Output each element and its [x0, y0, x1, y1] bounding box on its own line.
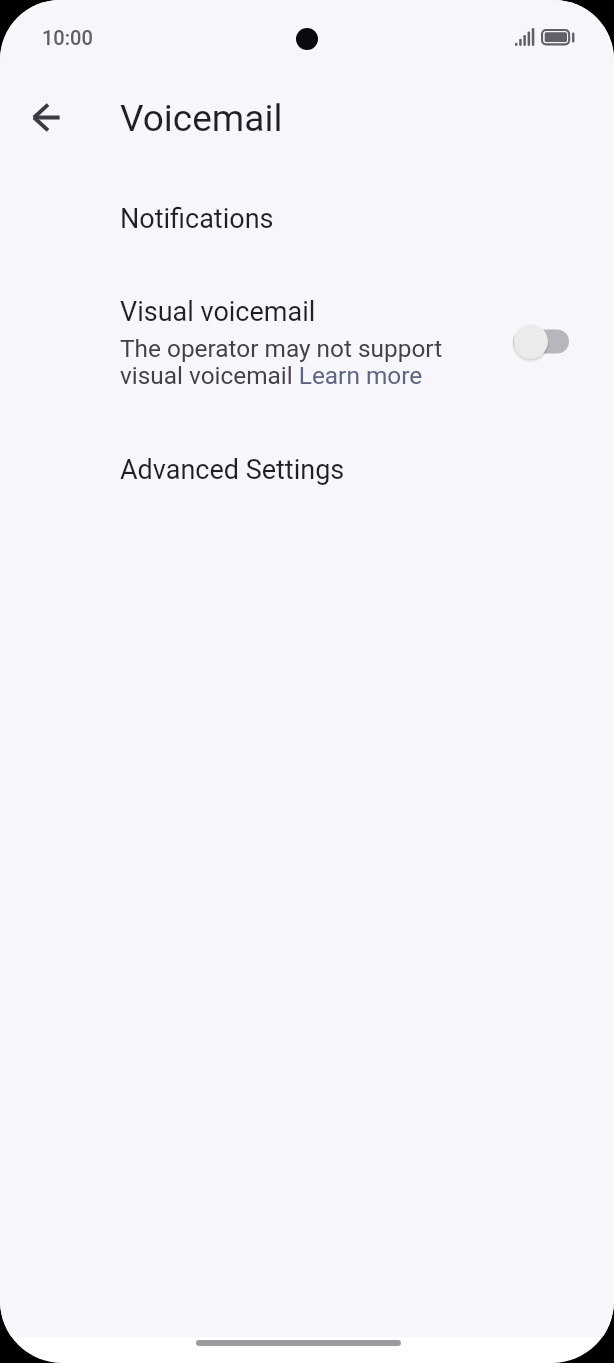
button[interactable]: Visual voicemail [0, 290, 614, 402]
staticText: Voicemail [120, 97, 283, 140]
button[interactable]: Back [20, 91, 72, 143]
staticText: 10:00 [42, 26, 93, 49]
button[interactable]: Advanced Settings [0, 448, 614, 492]
staticText: Advanced Settings [120, 454, 345, 486]
button[interactable]: Notifications [0, 197, 614, 241]
button[interactable]: Visual voicemail [503, 320, 575, 364]
staticText: The operator may not support visual voic… [120, 334, 450, 390]
staticText: Notifications [120, 203, 274, 235]
staticText: Visual voicemail [120, 296, 316, 328]
